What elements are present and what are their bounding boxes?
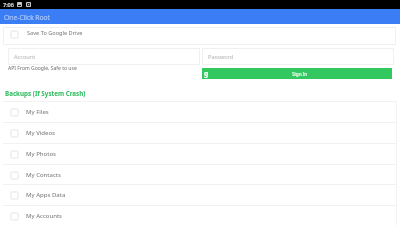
staticText: My Videos [26,129,56,137]
button[interactable]: Save To Google Drive [3,27,396,45]
button[interactable]: Password [202,48,394,65]
staticText: My Contacts [26,171,61,179]
staticText: Sign In [292,71,308,77]
button[interactable]: My Photos [3,143,396,164]
button[interactable]: My Accounts [3,205,396,225]
staticText: Password [208,53,234,61]
button[interactable]: Sign In [202,68,392,79]
button[interactable]: My Files [3,101,396,122]
staticText: Backups (If System Crash) [5,89,86,98]
other: Screenshot notification [17,2,22,7]
button[interactable]: My Apps Data [3,184,396,205]
staticText: One-Click Root [4,13,50,22]
staticText: My Photos [26,150,56,158]
staticText: My Accounts [26,212,63,220]
button[interactable]: One-Click Root [0,9,400,24]
staticText: 7:06 [3,1,14,8]
staticText: Account [14,53,36,61]
staticText: Save To Google Drive [27,29,83,37]
staticText: My Files [26,108,49,116]
staticText: g [204,69,209,78]
button[interactable]: My Contacts [3,164,396,185]
other: Media notification [26,2,31,7]
staticText: My Apps Data [26,191,66,199]
button[interactable]: My Videos [3,122,396,143]
button[interactable]: Account [8,48,200,65]
staticText: API From Google, Safe to use [8,65,77,72]
